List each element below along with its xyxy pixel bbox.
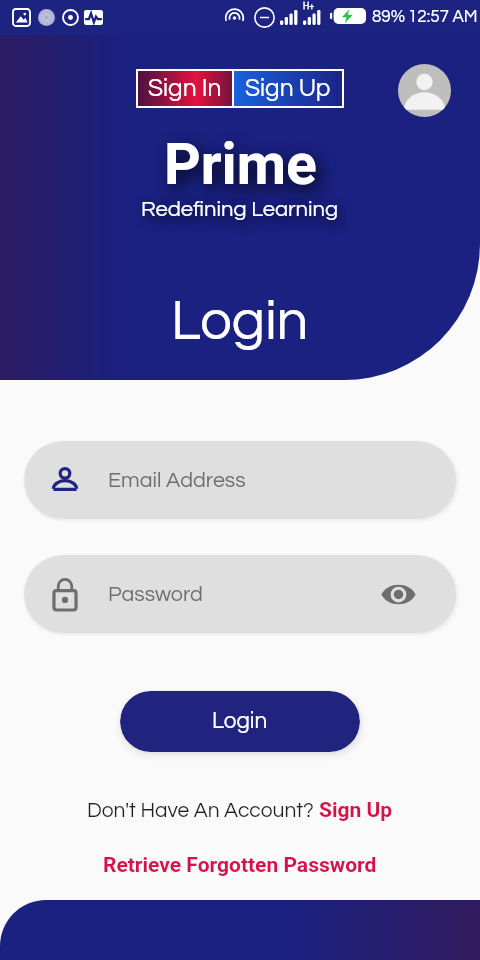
- staticText: Sign In: [148, 76, 222, 101]
- staticText: Password: [108, 583, 203, 605]
- staticText: Prime: [164, 131, 317, 198]
- button[interactable]: Retrieve Forgotten Password: [103, 853, 377, 878]
- button[interactable]: Sign In: [138, 71, 232, 106]
- button[interactable]: [0, 900, 480, 960]
- staticText: 89%: [372, 8, 406, 26]
- staticText: Login: [171, 293, 309, 351]
- staticText: Retrieve Forgotten Password: [103, 853, 377, 878]
- staticText: H+: [303, 2, 315, 11]
- button[interactable]: Profile: [398, 64, 451, 117]
- staticText: 12:57 AM: [408, 8, 478, 26]
- staticText: Sign Up: [319, 798, 393, 823]
- staticText: Email Address: [108, 469, 246, 491]
- staticText: Sign Up: [245, 76, 331, 101]
- button[interactable]: Email Address: [24, 441, 456, 519]
- button[interactable]: Show password: [372, 568, 424, 620]
- staticText: Login: [212, 710, 268, 733]
- staticText: Redefining Learning: [141, 198, 339, 221]
- button[interactable]: Sign Up: [319, 798, 393, 823]
- button[interactable]: Sign Up: [234, 71, 342, 106]
- button[interactable]: Login: [120, 691, 360, 752]
- staticText: Don't Have An Account?: [87, 800, 319, 822]
- button[interactable]: Password: [24, 555, 456, 633]
